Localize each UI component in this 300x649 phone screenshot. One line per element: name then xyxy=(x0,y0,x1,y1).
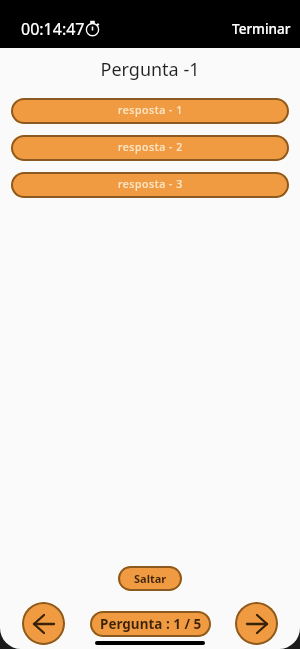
button[interactable]: Terminar xyxy=(232,20,291,38)
staticText: Pergunta : 1 / 5 xyxy=(100,615,202,633)
staticText: resposta - 2 xyxy=(118,140,183,154)
staticText: Saltar xyxy=(134,571,167,586)
button[interactable]: resposta - 2 xyxy=(11,135,289,161)
button[interactable]: Pergunta : 1 / 5 xyxy=(90,611,211,637)
button[interactable]: resposta - 3 xyxy=(11,172,289,198)
staticText: Terminar xyxy=(232,20,291,38)
button[interactable]: Previous question xyxy=(22,602,65,645)
staticText: Pergunta -1 xyxy=(0,57,300,82)
staticText: resposta - 3 xyxy=(118,177,183,191)
button[interactable]: resposta - 1 xyxy=(11,98,289,124)
button[interactable]: Saltar xyxy=(118,566,182,591)
staticText: 00:14:47 xyxy=(21,18,85,40)
staticText: resposta - 1 xyxy=(118,103,183,117)
button[interactable]: Next question xyxy=(235,602,278,645)
